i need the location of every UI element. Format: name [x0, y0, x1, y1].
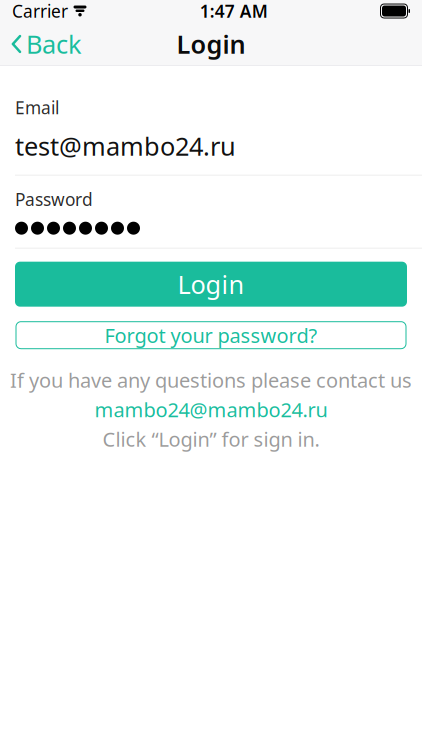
staticText: Email [15, 96, 59, 119]
staticText: Login [176, 27, 245, 61]
button[interactable]: Forgot your password? [16, 322, 406, 349]
button[interactable]: Back [0, 22, 92, 66]
button[interactable]: mambo24@mambo24.ru [94, 396, 327, 423]
staticText: Password [15, 188, 93, 211]
staticText: If you have any questions please contact… [10, 367, 412, 393]
staticText: Carrier [12, 0, 68, 22]
staticText: test@mambo24.ru [15, 129, 236, 163]
staticText: Back [26, 27, 82, 61]
button[interactable]: Login [15, 262, 407, 307]
staticText: Forgot your password? [104, 322, 317, 348]
staticText: 1:47 AM [200, 0, 268, 22]
staticText: Click “Login” for sign in. [102, 426, 319, 452]
staticText: Login [177, 267, 244, 301]
staticText: mambo24@mambo24.ru [94, 396, 327, 423]
